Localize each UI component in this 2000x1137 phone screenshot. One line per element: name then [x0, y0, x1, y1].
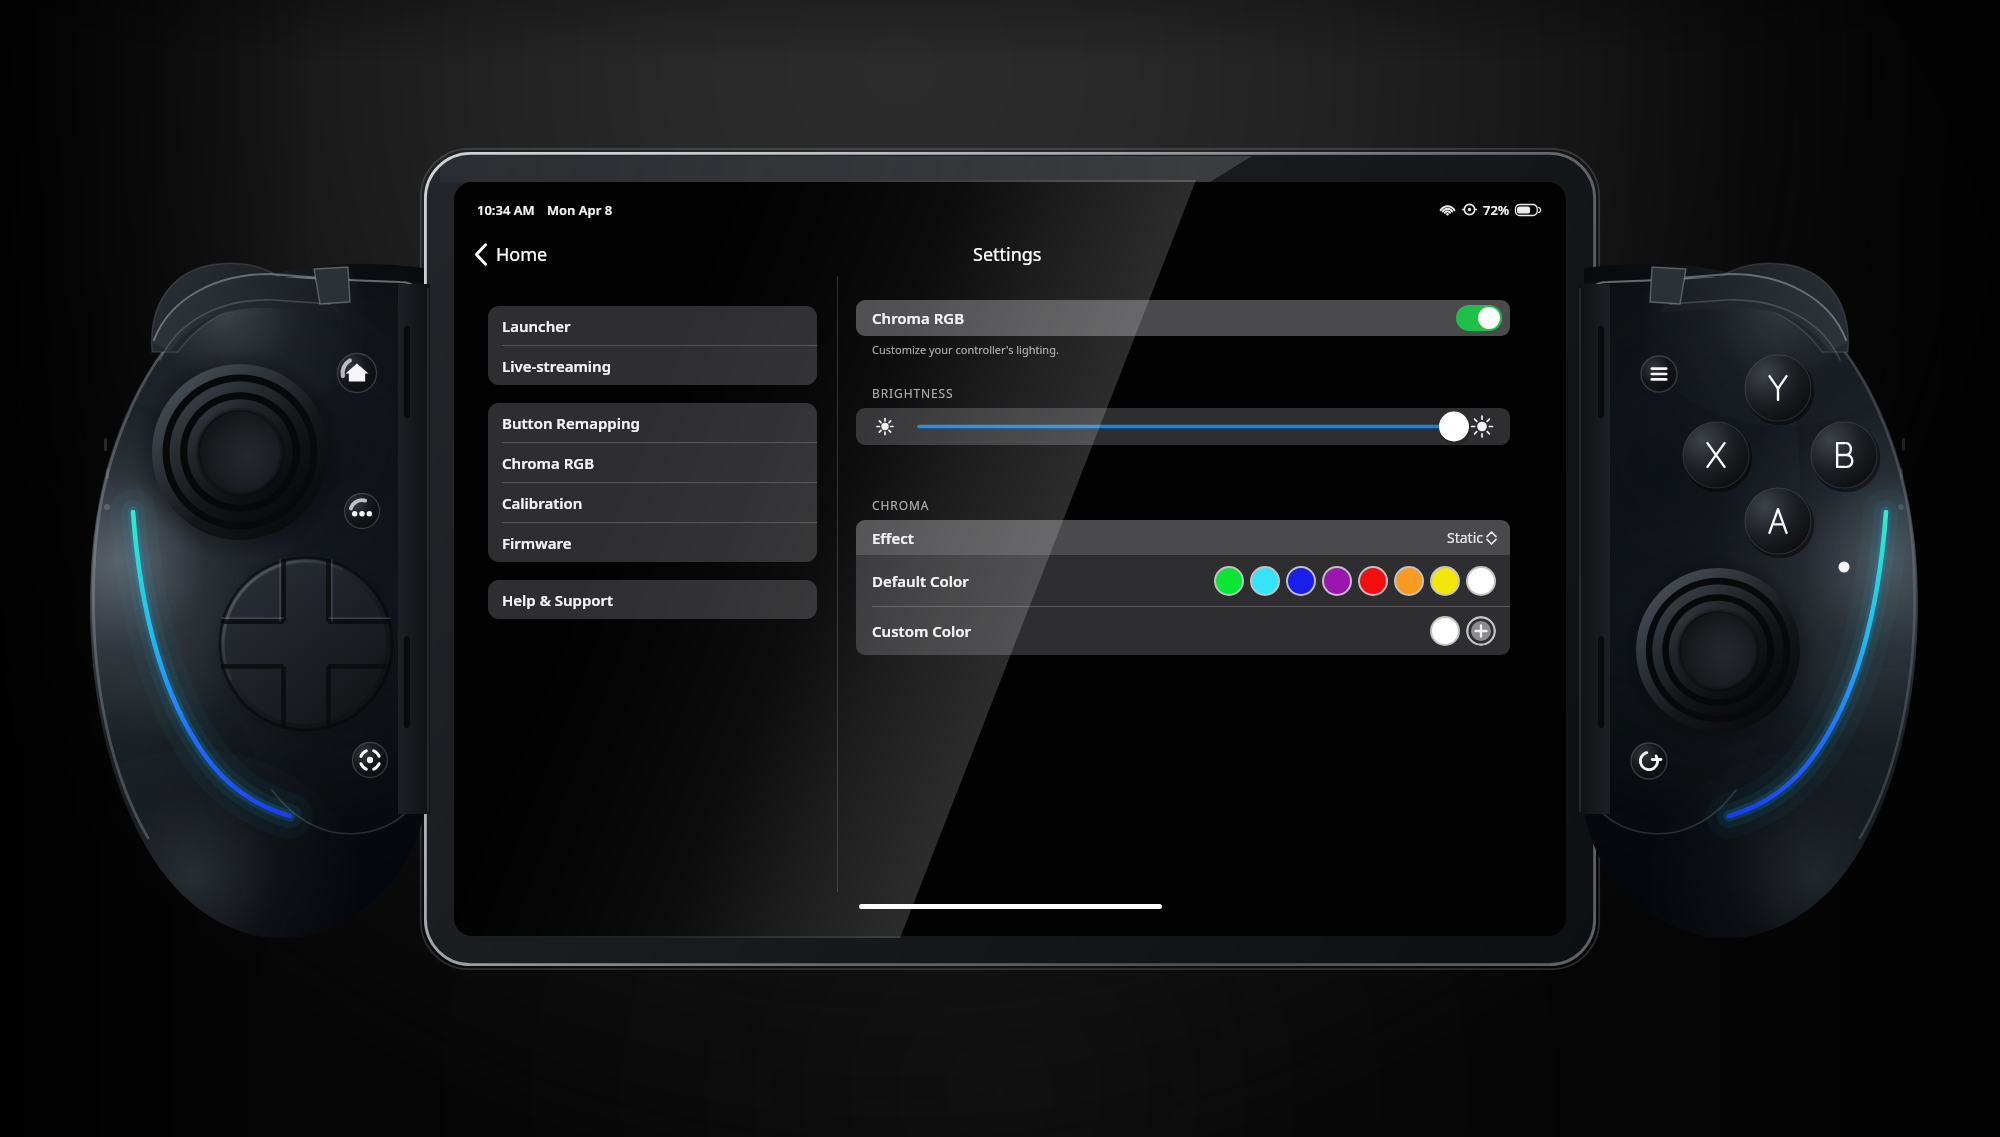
staticText: 72% [1483, 201, 1510, 219]
staticText: Button Remapping [502, 413, 640, 433]
button[interactable]: Preset colour 5 [1396, 568, 1422, 594]
staticText: Firmware [502, 533, 572, 553]
button[interactable]: Chroma RGB [856, 300, 1510, 336]
button[interactable]: Live-streaming [488, 346, 817, 385]
staticText: Help & Support [502, 590, 614, 610]
staticText: Calibration [502, 493, 583, 513]
button[interactable]: Button Remapping [488, 403, 817, 442]
staticText: Static [1447, 528, 1483, 547]
staticText: Launcher [502, 316, 571, 336]
button[interactable]: Launcher [488, 306, 817, 345]
staticText: Live-streaming [502, 356, 612, 376]
button[interactable]: Calibration [488, 483, 817, 522]
staticText: Custom Color [872, 621, 972, 641]
button[interactable]: Effect [856, 520, 1510, 555]
staticText: Chroma RGB [872, 308, 965, 328]
staticText: Mon Apr 8 [547, 201, 613, 219]
button[interactable]: Default Color [856, 555, 1510, 606]
button[interactable]: Preset colour 7 [1468, 568, 1494, 594]
button[interactable]: Chroma RGB [488, 443, 817, 482]
button[interactable]: Preset colour 0 [1216, 568, 1242, 594]
staticText: Settings [973, 242, 1042, 267]
button[interactable]: Preset colour 6 [1432, 568, 1458, 594]
button[interactable]: Firmware [488, 523, 817, 562]
button[interactable]: Chroma RGB toggle [1456, 305, 1502, 331]
button[interactable]: Preset colour 1 [1252, 568, 1278, 594]
staticText: CHROMA [872, 497, 930, 513]
staticText: Chroma RGB [502, 453, 595, 473]
staticText: Effect [872, 528, 914, 548]
button[interactable]: Add custom colour [1466, 616, 1496, 646]
staticText: BRIGHTNESS [872, 385, 954, 401]
staticText: 10:34 AM [477, 201, 535, 219]
button[interactable]: Preset colour 4 [1360, 568, 1386, 594]
button[interactable]: Preset colour 3 [1324, 568, 1350, 594]
button[interactable]: Help & Support [488, 580, 817, 619]
button[interactable]: Brightness slider [856, 408, 1510, 445]
staticText: Home [496, 242, 548, 267]
staticText: Customize your controller's lighting. [872, 342, 1059, 357]
staticText: Default Color [872, 571, 969, 591]
button[interactable]: Custom white [1432, 618, 1458, 644]
button[interactable]: Preset colour 2 [1288, 568, 1314, 594]
button[interactable]: Custom Color [856, 607, 1510, 655]
button[interactable]: Home [467, 237, 556, 272]
